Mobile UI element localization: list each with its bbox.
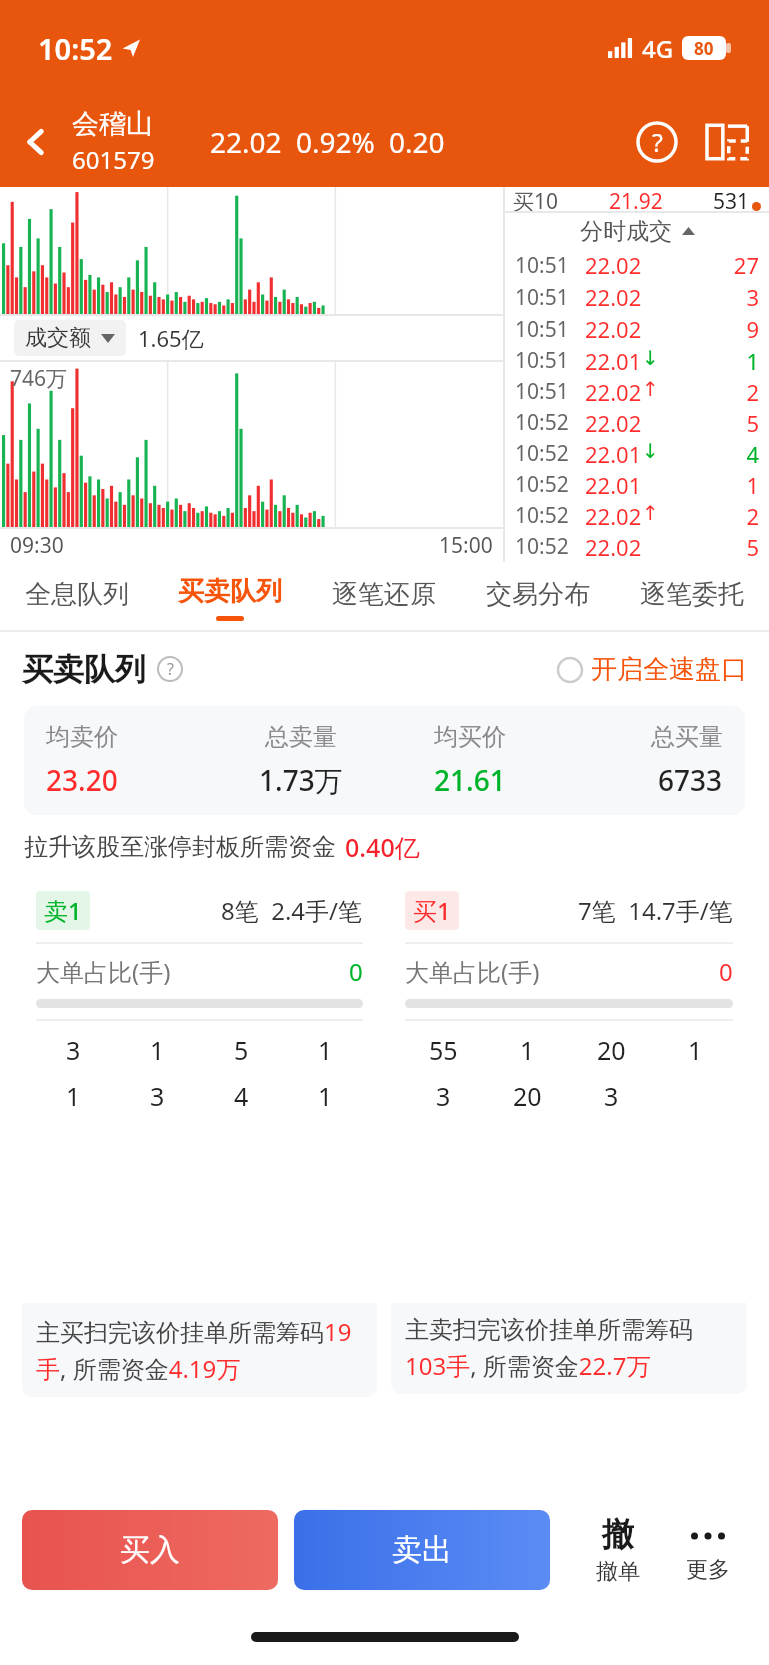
staticText: 746万 bbox=[10, 364, 68, 393]
staticText: 2 bbox=[713, 377, 759, 407]
staticText: ↓ bbox=[642, 346, 659, 369]
staticText: 7笔 14.7手/笔 bbox=[578, 894, 733, 927]
staticText: 80 bbox=[694, 37, 714, 60]
staticText: 买卖队列 bbox=[22, 650, 146, 689]
button[interactable]: 更多 bbox=[669, 1516, 747, 1584]
staticText: 1 bbox=[318, 1079, 333, 1113]
staticText: 1 bbox=[520, 1033, 535, 1067]
staticText: 均买价 bbox=[434, 722, 506, 752]
staticText: 9 bbox=[713, 314, 759, 344]
button[interactable]: 逐笔委托 bbox=[615, 562, 769, 630]
staticText: 会稽山 bbox=[72, 107, 153, 141]
staticText: 1 bbox=[688, 1033, 703, 1067]
button[interactable]: 分时成交 bbox=[505, 213, 769, 249]
staticText: 22.02 bbox=[585, 250, 642, 280]
staticText: ? bbox=[167, 658, 174, 680]
staticText: 0 bbox=[349, 955, 363, 988]
staticText: 5 bbox=[234, 1033, 249, 1067]
staticText: 0.92% bbox=[296, 123, 375, 161]
staticText: 1 bbox=[66, 1079, 81, 1113]
staticText: 09:30 bbox=[10, 531, 64, 560]
button[interactable]: 买1 bbox=[391, 879, 747, 1394]
staticText: 10:52 bbox=[515, 439, 577, 468]
button[interactable]: 买卖队列 bbox=[153, 562, 307, 630]
button[interactable]: Layout bbox=[695, 110, 759, 174]
staticText: 买1 bbox=[413, 894, 451, 927]
staticText: 开启全速盘口 bbox=[591, 653, 747, 686]
staticText: 22.02 bbox=[585, 282, 642, 312]
staticText: 22.02 bbox=[585, 408, 642, 438]
staticText: 1.65亿 bbox=[138, 323, 204, 353]
staticText: 2 bbox=[713, 501, 759, 531]
staticText: 逐笔委托 bbox=[640, 578, 744, 611]
staticText: 20 bbox=[597, 1033, 626, 1067]
staticText: 总买量 bbox=[651, 722, 723, 752]
button[interactable]: 卖出 bbox=[294, 1510, 550, 1590]
button[interactable]: 开启全速盘口 bbox=[557, 653, 747, 686]
staticText: 10:52 bbox=[515, 501, 577, 530]
button[interactable]: 全息队列 bbox=[0, 562, 153, 630]
staticText: 卖出 bbox=[392, 1531, 452, 1569]
staticText: 3 bbox=[436, 1079, 451, 1113]
button[interactable]: 买入 bbox=[22, 1510, 278, 1590]
staticText: 22.02 bbox=[585, 377, 642, 407]
button[interactable]: Back bbox=[0, 96, 72, 187]
staticText: 交易分布 bbox=[486, 578, 590, 611]
staticText: 3 bbox=[604, 1079, 619, 1113]
staticText: 4 bbox=[234, 1079, 249, 1113]
staticText: 4 bbox=[713, 439, 759, 469]
staticText: 5 bbox=[713, 532, 759, 562]
staticText: 1.73万 bbox=[259, 761, 343, 799]
staticText: 10:52 bbox=[515, 408, 577, 437]
staticText: 27 bbox=[713, 250, 759, 280]
staticText: 20 bbox=[513, 1079, 542, 1113]
staticText: 主卖扫完该价挂单所需筹码103手, 所需资金22.7万 bbox=[405, 1315, 733, 1382]
button[interactable]: 卖1 bbox=[22, 879, 377, 1397]
staticText: ↑ bbox=[642, 377, 659, 400]
staticText: 4G bbox=[642, 32, 674, 65]
staticText: 22.02 bbox=[585, 314, 642, 344]
staticText: 3 bbox=[150, 1079, 165, 1113]
staticText: 大单占比(手) bbox=[36, 955, 171, 988]
staticText: 10:52 bbox=[515, 470, 577, 499]
button[interactable]: Info bbox=[156, 655, 184, 683]
button[interactable]: 成交额 bbox=[14, 320, 126, 356]
button[interactable]: 交易分布 bbox=[461, 562, 615, 630]
staticText: 10:51 bbox=[515, 251, 577, 280]
staticText: 1 bbox=[713, 346, 759, 376]
staticText: 21.92 bbox=[609, 187, 663, 211]
staticText: 3 bbox=[66, 1033, 81, 1067]
staticText: 逐笔还原 bbox=[332, 578, 436, 611]
staticText: 更多 bbox=[686, 1556, 730, 1584]
staticText: 10:51 bbox=[515, 346, 577, 375]
staticText: 22.01 bbox=[585, 470, 642, 500]
staticText: ↑ bbox=[642, 501, 659, 524]
staticText: 601579 bbox=[72, 143, 155, 176]
staticText: 主买扫完该价挂单所需筹码19手, 所需资金4.19万 bbox=[36, 1315, 363, 1385]
staticText: 10:51 bbox=[515, 377, 577, 406]
staticText: 8笔 2.4手/笔 bbox=[221, 894, 363, 927]
button[interactable]: 撤 bbox=[579, 1514, 657, 1586]
staticText: 22.02 bbox=[585, 501, 642, 531]
staticText: 0.20 bbox=[389, 123, 445, 161]
staticText: 买入 bbox=[120, 1531, 180, 1569]
staticText: 23.20 bbox=[46, 761, 118, 799]
staticText: ? bbox=[652, 125, 663, 159]
staticText: 15:00 bbox=[439, 531, 493, 560]
staticText: 拉升该股至涨停封板所需资金 bbox=[24, 832, 336, 862]
staticText: 21.61 bbox=[434, 761, 506, 799]
staticText: 5 bbox=[713, 408, 759, 438]
staticText: 3 bbox=[713, 282, 759, 312]
staticText: 0.40亿 bbox=[345, 830, 420, 864]
staticText: 撤 bbox=[602, 1514, 634, 1554]
staticText: 买卖队列 bbox=[178, 575, 282, 608]
button[interactable]: 逐笔还原 bbox=[307, 562, 461, 630]
staticText: 10:51 bbox=[515, 283, 577, 312]
staticText: 0 bbox=[719, 955, 733, 988]
staticText: 1 bbox=[150, 1033, 165, 1067]
button[interactable]: Help bbox=[625, 110, 689, 174]
staticText: 分时成交 bbox=[580, 217, 672, 246]
staticText: 531 bbox=[713, 187, 750, 211]
staticText: 卖1 bbox=[44, 894, 82, 927]
staticText: 6733 bbox=[658, 761, 723, 799]
